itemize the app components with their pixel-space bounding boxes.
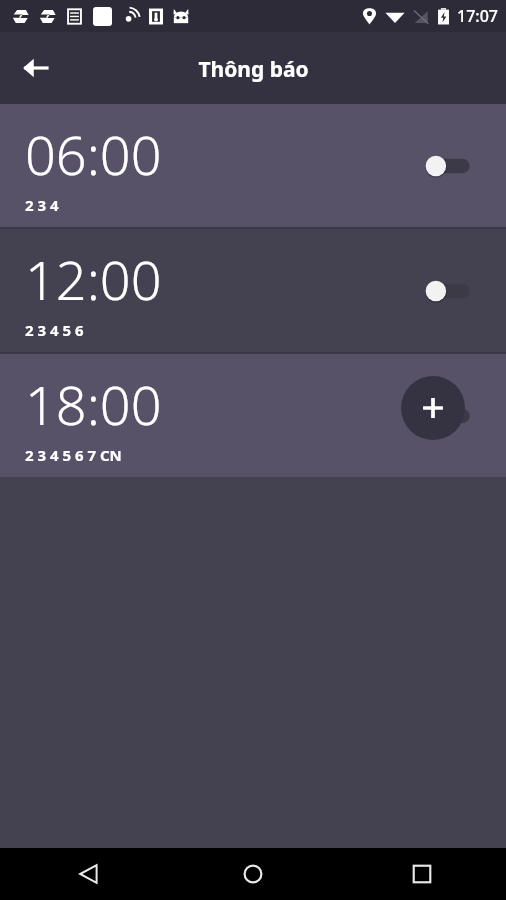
button[interactable]: 18:00 (0, 354, 506, 477)
button[interactable]: Back (0, 848, 168, 900)
staticText: 12:00 (25, 242, 162, 316)
staticText: 2 3 4 5 6 7 CN (25, 445, 122, 465)
button[interactable]: 06:00 (0, 104, 506, 227)
staticText: Thông báo (198, 55, 309, 84)
button[interactable]: Add alarm (401, 376, 465, 440)
button[interactable]: 12:00 (0, 229, 506, 352)
button[interactable]: Back (8, 40, 64, 96)
staticText: 2 3 4 5 6 (25, 320, 84, 340)
staticText: 18:00 (25, 367, 162, 441)
button[interactable]: Toggle alarm (424, 148, 480, 184)
staticText: 17:07 (457, 5, 498, 27)
button[interactable]: Home (168, 848, 337, 900)
staticText: 06:00 (25, 117, 162, 191)
button[interactable]: Toggle alarm (424, 398, 480, 434)
button[interactable]: Recent apps (337, 848, 506, 900)
staticText: 2 3 4 (25, 195, 59, 215)
button[interactable]: Toggle alarm (424, 273, 480, 309)
